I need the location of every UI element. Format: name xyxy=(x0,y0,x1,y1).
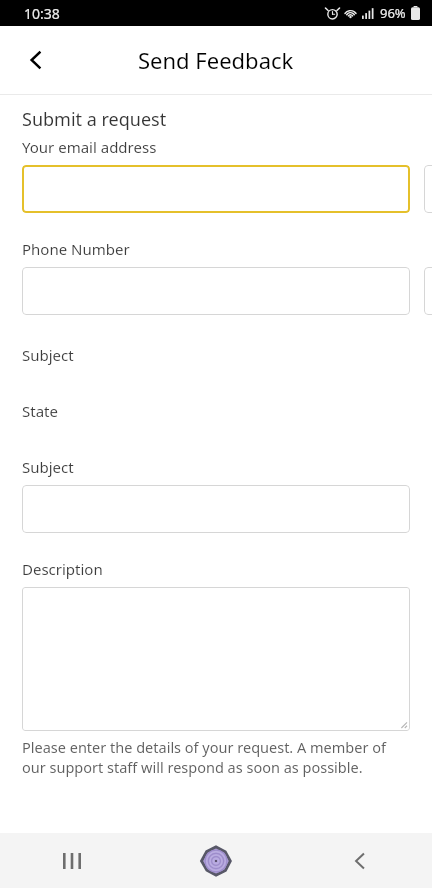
staticText: Subject xyxy=(22,457,74,477)
staticText: Description xyxy=(22,559,103,579)
button[interactable]: Recent apps xyxy=(0,833,144,888)
button[interactable] xyxy=(22,267,410,315)
staticText: Submit a request xyxy=(22,107,167,132)
staticText: 96% xyxy=(380,4,406,22)
button[interactable]: Home xyxy=(144,833,288,888)
button[interactable] xyxy=(22,485,410,533)
staticText: Phone Number xyxy=(22,239,130,259)
staticText: Send Feedback xyxy=(138,45,294,75)
button[interactable] xyxy=(22,165,410,213)
button[interactable] xyxy=(22,587,410,731)
staticText: Please enter the details of your request… xyxy=(22,737,410,778)
button[interactable]: Back xyxy=(12,36,60,84)
button[interactable] xyxy=(424,267,432,315)
staticText: State xyxy=(22,401,58,421)
button[interactable] xyxy=(424,165,432,213)
staticText: Subject xyxy=(22,345,74,365)
staticText: 10:38 xyxy=(24,4,60,23)
button[interactable]: Back xyxy=(288,833,432,888)
staticText: Your email address xyxy=(22,137,157,157)
